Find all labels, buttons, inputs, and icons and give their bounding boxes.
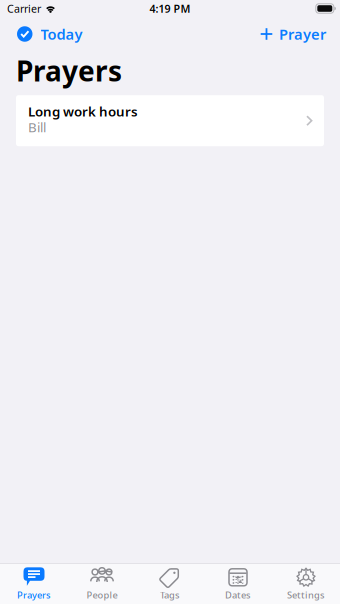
- staticText: People: [86, 589, 117, 601]
- button[interactable]: Settings: [272, 564, 340, 604]
- staticText: 4:19 PM: [149, 1, 190, 16]
- staticText: Dates: [225, 589, 251, 601]
- staticText: Today: [40, 24, 82, 44]
- button[interactable]: People: [68, 564, 136, 604]
- button[interactable]: Long work hours: [16, 95, 324, 146]
- staticText: Prayers: [16, 52, 122, 89]
- button[interactable]: Tags: [136, 564, 204, 604]
- button[interactable]: Prayers: [0, 564, 68, 604]
- staticText: Long work hours: [28, 102, 138, 120]
- staticText: Settings: [287, 589, 325, 601]
- staticText: Prayer: [279, 24, 326, 44]
- staticText: Bill: [28, 118, 46, 136]
- staticText: Prayers: [17, 589, 51, 601]
- button[interactable]: Prayer: [250, 19, 340, 49]
- staticText: Tags: [160, 589, 180, 601]
- button[interactable]: Today: [0, 19, 92, 49]
- button[interactable]: Dates: [204, 564, 272, 604]
- staticText: Carrier: [7, 1, 41, 16]
